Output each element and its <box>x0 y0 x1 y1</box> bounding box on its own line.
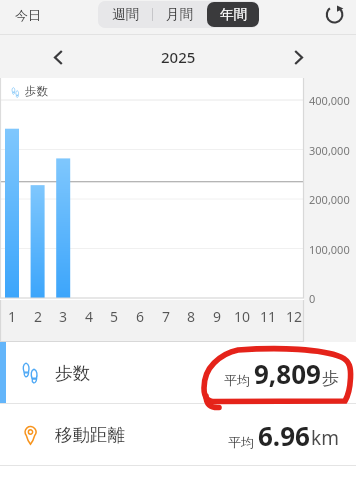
button[interactable]: 週間 <box>98 1 152 28</box>
staticText: 9 <box>213 307 222 326</box>
staticText: 歩 <box>322 368 339 389</box>
staticText: 0 <box>309 291 316 306</box>
staticText: 8 <box>187 307 196 326</box>
staticText: 平均 <box>224 372 250 388</box>
button[interactable]: Previous year <box>40 39 76 75</box>
button[interactable]: 移動距離 <box>0 404 356 466</box>
staticText: 歩数 <box>25 84 48 98</box>
staticText: 6.96 <box>258 418 310 453</box>
staticText: 400,000 <box>309 93 350 108</box>
staticText: 11 <box>260 307 277 326</box>
staticText: 週間 <box>112 6 139 23</box>
staticText: 1 <box>8 307 17 326</box>
staticText: 3 <box>59 307 68 326</box>
staticText: 200,000 <box>309 192 350 207</box>
staticText: 300,000 <box>309 143 350 158</box>
button[interactable]: 月間 <box>152 1 207 28</box>
staticText: 4 <box>85 307 94 326</box>
staticText: 移動距離 <box>55 424 125 446</box>
staticText: km <box>311 425 339 451</box>
staticText: 2 <box>34 307 43 326</box>
staticText: 6 <box>136 307 145 326</box>
staticText: 10 <box>234 307 251 326</box>
staticText: 5 <box>110 307 119 326</box>
staticText: 9,809 <box>254 356 321 391</box>
staticText: 2025 <box>161 47 196 67</box>
staticText: 7 <box>162 307 171 326</box>
staticText: 月間 <box>166 6 193 23</box>
staticText: 12 <box>286 307 303 326</box>
button[interactable]: 年間 <box>207 2 259 27</box>
staticText: 今日 <box>15 7 41 23</box>
staticText: 100,000 <box>309 242 350 257</box>
staticText: 年間 <box>220 6 247 23</box>
button[interactable]: 今日 <box>8 2 48 28</box>
staticText: 平均 <box>228 434 254 450</box>
staticText: 歩数 <box>55 362 90 384</box>
button[interactable]: 歩数 <box>0 342 356 404</box>
button[interactable]: Next year <box>280 39 316 75</box>
button[interactable]: Refresh <box>320 0 349 28</box>
